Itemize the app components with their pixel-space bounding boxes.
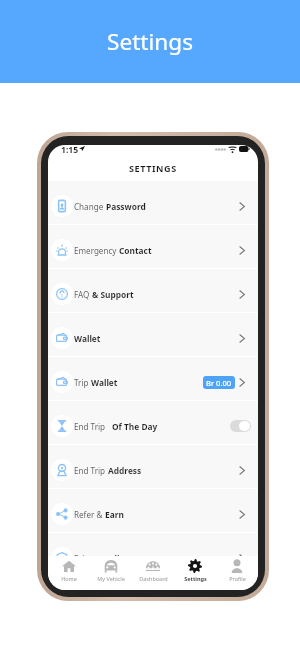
staticText: & Support — [92, 289, 134, 300]
staticText: SETTINGS — [129, 162, 177, 174]
staticText: My Vehicle — [97, 575, 125, 582]
button[interactable]: End Trip — [48, 445, 258, 489]
staticText: Emergency — [74, 245, 119, 256]
staticText: Br 0.00 — [206, 378, 232, 388]
staticText: Password — [106, 201, 146, 212]
staticText: Trip — [74, 377, 91, 388]
staticText: Settings — [107, 26, 193, 57]
staticText: Dashboard — [139, 575, 168, 582]
staticText: Home — [61, 575, 77, 582]
button[interactable]: End Trip — [48, 401, 258, 445]
button[interactable]: FAQ — [48, 269, 258, 313]
button[interactable]: Profile — [216, 557, 258, 590]
staticText: Profile — [229, 575, 246, 582]
staticText: 1:15 — [61, 145, 79, 156]
staticText: Earn — [105, 509, 124, 520]
button[interactable]: Change — [48, 181, 258, 225]
button[interactable]: Home — [48, 557, 90, 590]
staticText: Policy — [104, 553, 129, 556]
staticText: End Trip — [74, 465, 108, 476]
button[interactable]: My Vehicle — [90, 557, 132, 590]
staticText: Settings — [184, 575, 207, 582]
staticText: Refer & — [74, 509, 105, 520]
button[interactable]: Settings — [174, 557, 216, 590]
staticText: Wallet — [74, 333, 101, 344]
staticText: Address — [108, 465, 142, 476]
staticText: Change — [74, 201, 106, 212]
button[interactable]: Privacy — [48, 533, 258, 556]
staticText: Contact — [119, 245, 152, 256]
staticText: Wallet — [91, 377, 118, 388]
button[interactable]: Refer & — [48, 489, 258, 533]
staticText: Privacy — [74, 553, 104, 556]
button[interactable]: Trip — [48, 357, 258, 401]
staticText: FAQ — [74, 289, 92, 300]
staticText: End Trip — [74, 421, 112, 432]
button[interactable]: Wallet — [48, 313, 258, 357]
button[interactable]: Emergency — [48, 225, 258, 269]
button[interactable]: Toggle end trip of the day — [230, 420, 251, 432]
button[interactable]: Dashboard — [132, 557, 174, 590]
staticText: Of The Day — [112, 421, 158, 432]
